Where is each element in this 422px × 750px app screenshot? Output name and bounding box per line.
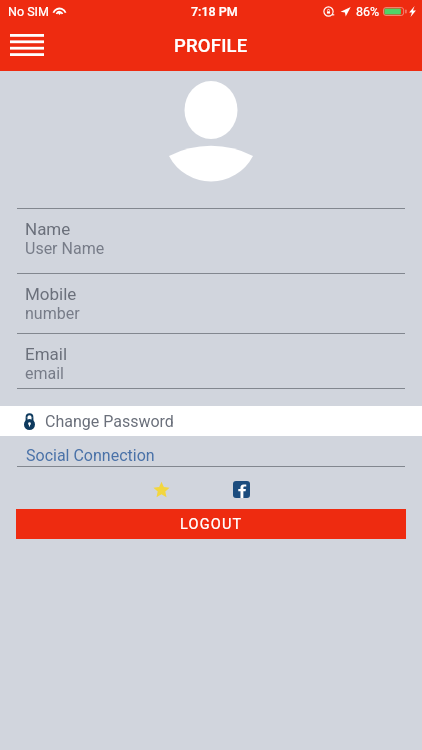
- button[interactable]: LOGOUT: [16, 509, 406, 539]
- staticText: email: [25, 364, 64, 383]
- staticText: 86%: [356, 4, 380, 19]
- staticText: Email: [25, 344, 68, 364]
- staticText: Mobile: [25, 284, 77, 304]
- button[interactable]: Connect with Facebook: [226, 474, 256, 504]
- staticText: 7:18 PM: [191, 4, 238, 19]
- staticText: LOGOUT: [180, 516, 243, 533]
- button[interactable]: Connect with favourites: [146, 474, 176, 504]
- staticText: PROFILE: [174, 35, 248, 57]
- staticText: Change Password: [45, 412, 174, 431]
- button[interactable]: Open navigation menu: [5, 25, 49, 65]
- staticText: User Name: [25, 239, 105, 258]
- staticText: Name: [25, 219, 71, 239]
- staticText: Social Connection: [26, 446, 155, 465]
- button[interactable]: Change Password: [0, 406, 422, 436]
- staticText: No SIM: [8, 4, 49, 19]
- staticText: number: [25, 304, 80, 323]
